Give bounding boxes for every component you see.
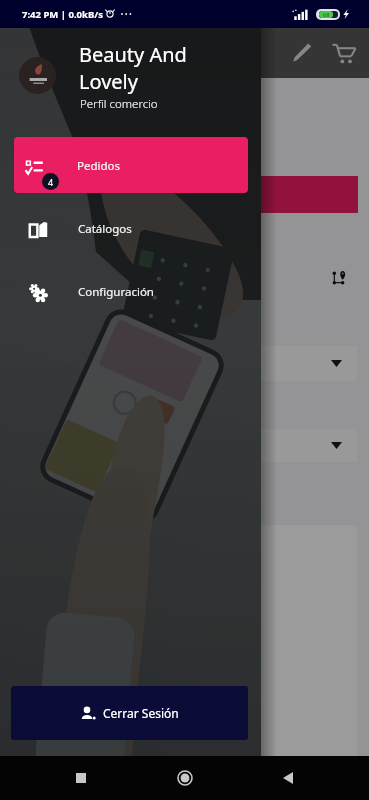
staticText: Filtrar por estado xyxy=(22,322,104,336)
button[interactable]: Configuración xyxy=(0,275,261,309)
staticText: Pedidos xyxy=(77,158,121,174)
staticText: Perfil comercio xyxy=(80,96,158,112)
button[interactable]: Editar xyxy=(281,32,323,74)
button[interactable]: Catálogos xyxy=(0,212,261,246)
staticText: Todos los pedidos xyxy=(26,356,127,372)
button[interactable]: Inicio xyxy=(163,756,207,800)
staticText: Catálogos xyxy=(78,221,132,237)
staticText: 4 xyxy=(48,176,54,188)
staticText: Configuración xyxy=(78,284,154,300)
button[interactable]: Atras xyxy=(266,756,310,800)
button[interactable]: Recientes xyxy=(59,756,103,800)
button[interactable]: Logo comercio xyxy=(19,57,56,94)
button[interactable]: Pedidos xyxy=(14,137,248,193)
button[interactable]: Todos los pedidos xyxy=(16,346,357,381)
staticText: Lovely xyxy=(79,68,138,95)
button[interactable]: MIS PEDIDOS xyxy=(16,176,358,213)
button[interactable]: Ubicacion xyxy=(329,269,348,288)
staticText: Beauty And xyxy=(79,41,187,68)
button[interactable]: Cerrar Sesión xyxy=(11,686,248,740)
staticText: Cerrar Sesión xyxy=(103,705,179,721)
staticText: 7:42 PM | 0.0kB/s xyxy=(22,8,103,21)
staticText: MIS PEDIDOS xyxy=(145,186,229,204)
button[interactable]: Carrito xyxy=(323,32,365,74)
button[interactable] xyxy=(16,429,357,462)
staticText: 68 xyxy=(323,11,330,18)
